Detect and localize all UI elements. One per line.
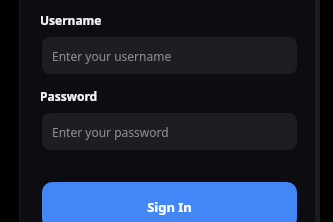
staticText: Enter your username (52, 48, 172, 64)
staticText: Password (40, 88, 98, 104)
button[interactable]: Enter your username (42, 37, 297, 74)
button[interactable]: Enter your password (42, 113, 297, 150)
staticText: Username (40, 12, 102, 28)
staticText: Sign In (147, 198, 192, 216)
button[interactable]: Sign In (42, 182, 297, 222)
staticText: Enter your password (52, 124, 169, 140)
